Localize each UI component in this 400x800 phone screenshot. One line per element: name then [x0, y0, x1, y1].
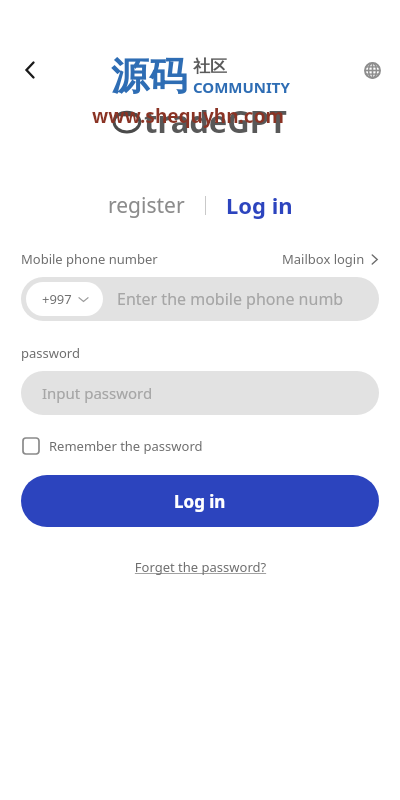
- staticText: +997: [42, 290, 72, 308]
- button[interactable]: Log in: [21, 475, 379, 527]
- staticText: 源码: [111, 52, 187, 100]
- staticText: Mobile phone number: [21, 250, 158, 268]
- button[interactable]: Input password: [21, 371, 379, 415]
- button[interactable]: +997: [26, 282, 103, 316]
- button[interactable]: Remember the password: [21, 434, 204, 458]
- staticText: Log in: [174, 490, 226, 513]
- staticText: 社区: [193, 56, 227, 77]
- staticText: Forget the password?: [133, 558, 268, 576]
- staticText: Input password: [42, 383, 153, 403]
- button[interactable]: Mailbox login: [282, 250, 379, 268]
- staticText: password: [21, 344, 80, 362]
- button[interactable]: Forget the password?: [127, 552, 274, 582]
- button[interactable]: Language: [352, 50, 392, 90]
- staticText: www.shequyhn.com: [92, 103, 285, 129]
- staticText: Mailbox login: [282, 250, 365, 268]
- staticText: Enter the mobile phone numb: [117, 288, 344, 310]
- staticText: Log in: [226, 190, 293, 220]
- button[interactable]: Back: [8, 48, 52, 92]
- staticText: Remember the password: [49, 437, 203, 455]
- button[interactable]: Log in: [216, 186, 303, 224]
- button[interactable]: register: [98, 187, 195, 224]
- staticText: tradeGPT: [144, 100, 287, 142]
- staticText: COMMUNITY: [193, 77, 290, 97]
- staticText: register: [108, 191, 185, 220]
